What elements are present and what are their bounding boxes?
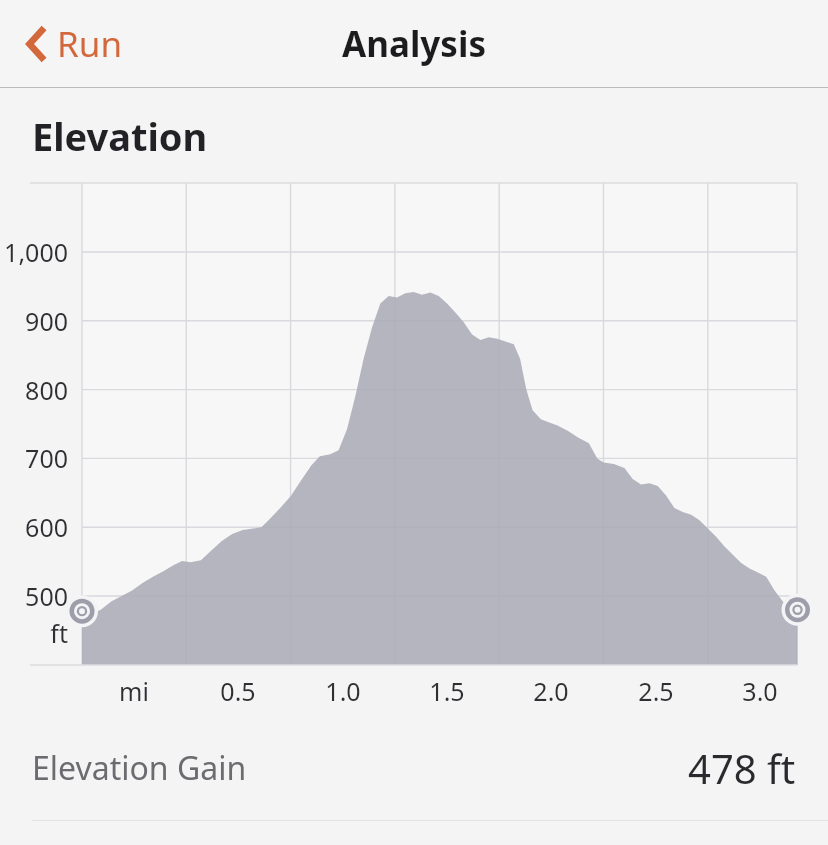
staticText: Analysis	[342, 20, 486, 68]
staticText: 900	[0, 304, 68, 338]
button[interactable]: Elevation Gain	[0, 715, 828, 820]
staticText: 600	[0, 510, 68, 544]
staticText: Elevation	[32, 110, 208, 162]
staticText: 500	[0, 579, 68, 613]
staticText: 800	[0, 373, 68, 407]
staticText: 3.0	[708, 674, 812, 708]
button[interactable]: Run	[20, 12, 129, 76]
staticText: mi	[82, 674, 186, 708]
staticText: 0.5	[186, 674, 290, 708]
staticText: 1.5	[395, 674, 499, 708]
staticText: 478 ft	[688, 741, 796, 795]
staticText: 2.0	[499, 674, 603, 708]
staticText: 1.0	[291, 674, 395, 708]
staticText: 1,000	[0, 235, 68, 269]
staticText: ft	[0, 616, 68, 650]
staticText: Run	[57, 20, 123, 68]
staticText: 700	[0, 441, 68, 475]
staticText: Elevation Gain	[32, 746, 247, 790]
staticText: 2.5	[604, 674, 708, 708]
